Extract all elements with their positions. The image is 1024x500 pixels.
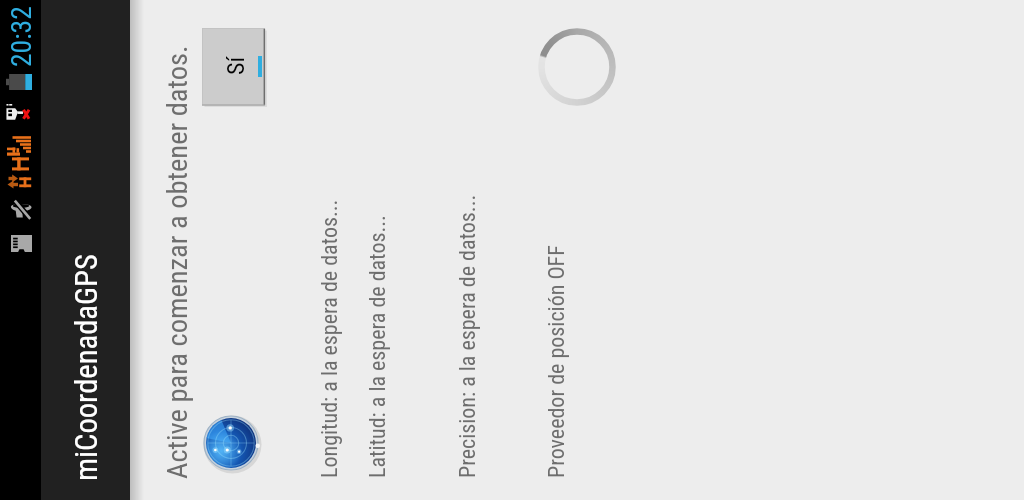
staticText: Precision: a la espera de datos... xyxy=(455,194,481,478)
staticText: miCoordenadaGPS xyxy=(69,254,105,481)
staticText: Sí xyxy=(222,56,250,75)
staticText: Active para comenzar a obtener datos. xyxy=(161,45,194,479)
staticText: Latitud: a la espera de datos... xyxy=(365,215,391,478)
staticText: 20:32 xyxy=(5,6,37,67)
staticText: Proveedor de posición OFF xyxy=(544,245,570,478)
button[interactable]: Activar GPS xyxy=(202,28,266,106)
staticText: Longitud: a la espera de datos... xyxy=(317,199,343,478)
